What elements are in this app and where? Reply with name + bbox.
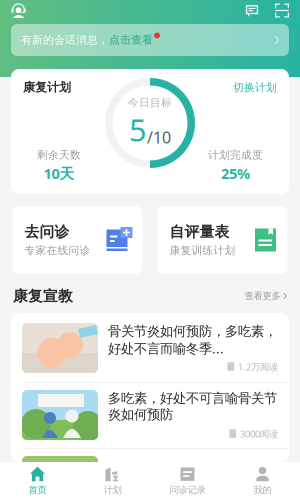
button[interactable]: 计划: [75, 462, 150, 500]
staticText: 康复训练计划: [169, 244, 235, 257]
staticText: 剩余天数: [37, 148, 81, 161]
button[interactable]: 去问诊: [12, 206, 142, 274]
staticText: 自评量表: [169, 223, 229, 241]
button[interactable]: 首页: [0, 462, 75, 500]
button[interactable]: 扫一扫: [275, 3, 289, 17]
button[interactable]: 骨关节炎如何预防，多吃素，好处不言而喻冬季...: [11, 323, 289, 373]
staticText: 10天: [43, 163, 74, 183]
staticText: 计划完成度: [208, 148, 263, 161]
button[interactable]: 问诊记录: [150, 462, 225, 500]
staticText: 有新的会话消息，: [21, 33, 109, 46]
button[interactable]: 查看更多: [245, 290, 287, 302]
staticText: 切换计划: [233, 81, 277, 94]
staticText: 去问诊: [24, 223, 69, 241]
staticText: 康复宣教: [13, 287, 73, 305]
staticText: 骨关节炎如何预防，多吃素，好处不言而喻冬季...: [108, 323, 277, 357]
staticText: 问诊记录: [169, 484, 205, 496]
button[interactable]: 膝关节炎的日常护理要点: [11, 456, 289, 500]
staticText: 点击查看: [109, 33, 153, 46]
button[interactable]: 自评量表: [157, 206, 287, 274]
staticText: 康复计划: [23, 80, 71, 95]
staticText: 多吃素，好处不可言喻骨关节炎如何预防: [108, 390, 277, 423]
button[interactable]: 消息: [245, 3, 259, 17]
staticText: 计划: [103, 484, 121, 496]
staticText: /10: [147, 127, 171, 148]
button[interactable]: 有新的会话消息，: [11, 24, 289, 56]
button[interactable]: 在线客服: [11, 3, 26, 18]
staticText: 今日目标: [128, 96, 172, 109]
staticText: 5: [129, 109, 147, 150]
button[interactable]: 切换计划: [233, 81, 277, 94]
staticText: 专家在线问诊: [24, 244, 90, 257]
button[interactable]: 我的: [225, 462, 300, 500]
button[interactable]: 多吃素，好处不可言喻骨关节炎如何预防: [11, 390, 289, 440]
staticText: 查看更多: [245, 290, 281, 302]
staticText: 首页: [28, 484, 46, 496]
staticText: 3000阅读: [240, 428, 278, 440]
staticText: 1.2万阅读: [238, 361, 278, 373]
staticText: 25%: [221, 163, 250, 183]
staticText: 我的: [253, 484, 271, 496]
